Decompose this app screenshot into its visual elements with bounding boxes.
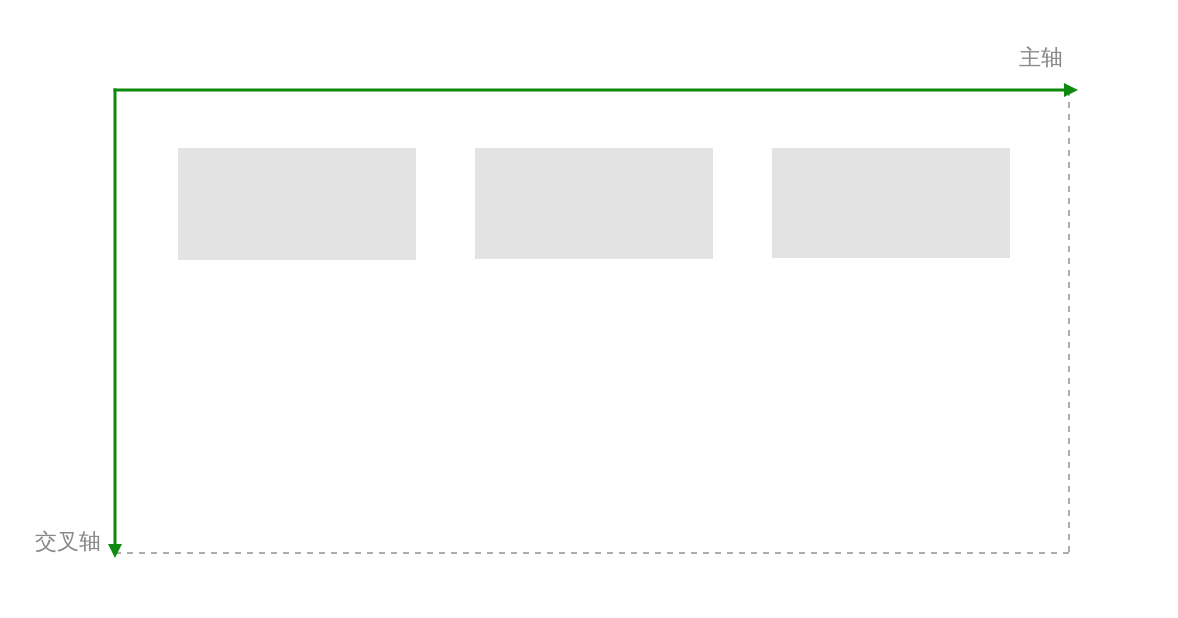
- button[interactable]: 交叉轴 cross axis: [35, 528, 101, 556]
- button[interactable]: 主轴 main axis: [1019, 44, 1063, 72]
- staticText: 交叉轴: [35, 528, 101, 556]
- staticText: 主轴: [1019, 44, 1063, 72]
